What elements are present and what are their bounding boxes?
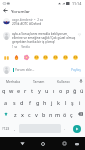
staticText: r xyxy=(24,87,27,94)
staticText: q xyxy=(2,87,6,94)
button[interactable]: Emoji xyxy=(32,53,40,61)
button[interactable]: t xyxy=(29,84,36,96)
button[interactable]: ozge.kimdenir • 2 sa xyxy=(0,15,85,26)
staticText: 20'lik #OTC #Oxford xyxy=(12,22,42,26)
staticText: s xyxy=(13,99,16,106)
button[interactable]: Emoji xyxy=(2,53,10,61)
staticText: h xyxy=(43,99,47,106)
staticText: Kullanıcı xyxy=(57,79,70,83)
staticText: u xyxy=(45,87,49,94)
staticText: b xyxy=(42,111,46,118)
button[interactable]: ğ xyxy=(71,84,78,96)
button[interactable]: z xyxy=(11,108,19,120)
button[interactable]: Sesle yaz xyxy=(76,77,85,84)
button[interactable]: i xyxy=(76,96,83,108)
button[interactable]: n xyxy=(47,108,54,120)
button[interactable]: o xyxy=(57,84,64,96)
button[interactable]: Beğen xyxy=(77,32,82,37)
staticText: ?123 xyxy=(2,126,10,131)
button[interactable]: b xyxy=(40,108,47,120)
staticText: Tamam xyxy=(33,79,45,83)
staticText: . xyxy=(64,126,66,132)
button[interactable]: a xyxy=(2,96,10,108)
button[interactable]: Geri xyxy=(15,137,29,150)
button[interactable]: Gönder xyxy=(69,120,85,137)
button[interactable]: h xyxy=(41,96,48,108)
button[interactable]: Emoji xyxy=(11,120,19,137)
button[interactable]: ş xyxy=(69,96,76,108)
button[interactable]: ü xyxy=(78,84,85,96)
button[interactable]: Son uygulamalar xyxy=(57,137,71,150)
staticText: Yorum ekle... xyxy=(15,68,35,72)
button[interactable]: x xyxy=(19,108,26,120)
button[interactable]: f xyxy=(26,96,34,108)
staticText: , xyxy=(14,126,16,132)
staticText: Paylaş xyxy=(71,68,81,72)
staticText: c xyxy=(28,111,31,118)
staticText: x xyxy=(21,111,24,118)
button[interactable]: Klavyeyi gizle xyxy=(71,138,83,150)
staticText: n xyxy=(49,111,53,118)
button[interactable]: q xyxy=(0,84,8,96)
button[interactable]: m xyxy=(54,108,61,120)
button[interactable]: w xyxy=(8,84,15,96)
button[interactable]: Emoji xyxy=(61,53,69,61)
button[interactable]: u xyxy=(43,84,50,96)
staticText: e xyxy=(17,87,21,94)
staticText: o xyxy=(59,87,63,94)
staticText: g xyxy=(36,99,40,106)
staticText: t xyxy=(31,87,34,94)
staticText: 1 sa Yanıtla xyxy=(12,45,30,49)
button[interactable]: Shift xyxy=(0,108,11,120)
staticText: l xyxy=(65,99,67,106)
button[interactable]: Emoji xyxy=(51,53,59,61)
button[interactable]: l xyxy=(62,96,69,108)
button[interactable]: ç xyxy=(68,108,75,120)
button[interactable]: s xyxy=(10,96,18,108)
button[interactable]: Paylaş xyxy=(70,68,82,72)
button[interactable]: Geri xyxy=(0,6,11,15)
staticText: ı xyxy=(53,87,55,94)
button[interactable]: g xyxy=(34,96,41,108)
button[interactable]: Merhaba xyxy=(0,77,26,84)
button[interactable]: Kullanıcı xyxy=(51,77,76,84)
button[interactable]: y xyxy=(36,84,43,96)
button[interactable]: Emoji xyxy=(71,53,79,61)
button[interactable]: p xyxy=(64,84,71,96)
staticText: a xyxy=(4,99,8,106)
staticText: ü xyxy=(80,87,84,94)
staticText: Merhaba xyxy=(6,79,20,83)
button[interactable]: d xyxy=(18,96,26,108)
button[interactable]: Sil xyxy=(75,108,85,120)
staticText: z xyxy=(14,111,17,118)
staticText: v xyxy=(35,111,38,118)
staticText: d xyxy=(20,99,24,106)
button[interactable]: k xyxy=(55,96,62,108)
staticText: ozge.kimdenir • 2 sa xyxy=(12,18,43,22)
staticText: Yorumlar xyxy=(11,8,30,14)
button[interactable]: v xyxy=(33,108,40,120)
staticText: y xyxy=(38,87,41,94)
button[interactable]: ö xyxy=(61,108,68,120)
button[interactable]: Tamam xyxy=(26,77,51,84)
button[interactable]: Emoji xyxy=(41,53,49,61)
button[interactable]: e xyxy=(15,84,22,96)
staticText: ö xyxy=(63,111,67,118)
button[interactable]: Emoji xyxy=(22,53,30,61)
button[interactable]: Emoji xyxy=(12,53,20,61)
button[interactable]: ı xyxy=(50,84,57,96)
button[interactable]: ayla.a Sonuçlarını merakla bekliyorum, e… xyxy=(0,26,85,49)
button[interactable]: ?123 xyxy=(0,120,11,137)
staticText: ş xyxy=(71,99,74,106)
button[interactable]: j xyxy=(48,96,55,108)
staticText: i xyxy=(79,99,81,106)
staticText: j xyxy=(51,99,53,106)
button[interactable]: Ana ekran xyxy=(36,137,50,150)
button[interactable]: r xyxy=(22,84,29,96)
staticText: 11:14 xyxy=(72,1,82,6)
button[interactable]: c xyxy=(26,108,33,120)
staticText: m xyxy=(55,111,61,118)
